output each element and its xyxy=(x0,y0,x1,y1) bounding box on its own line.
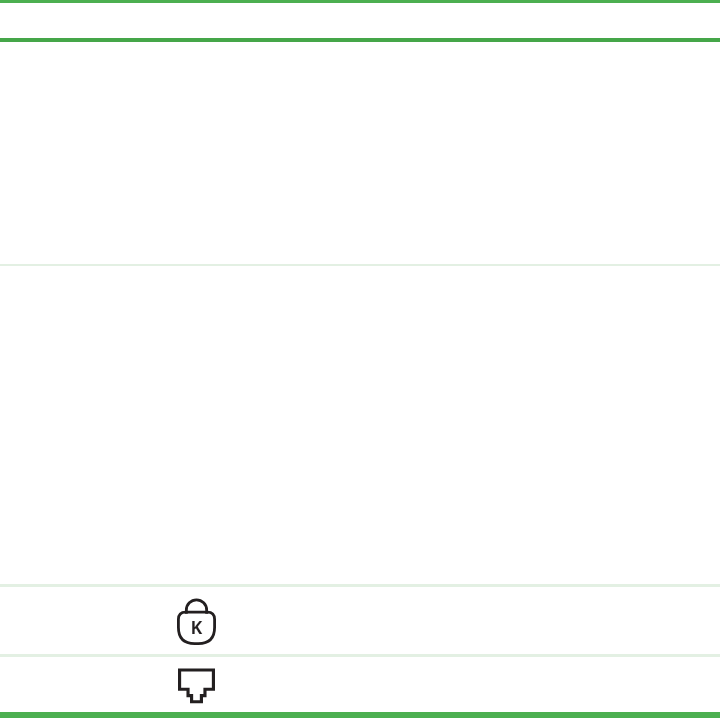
button[interactable]: Ethernet port xyxy=(150,657,242,713)
button[interactable]: Secure key xyxy=(150,588,242,654)
